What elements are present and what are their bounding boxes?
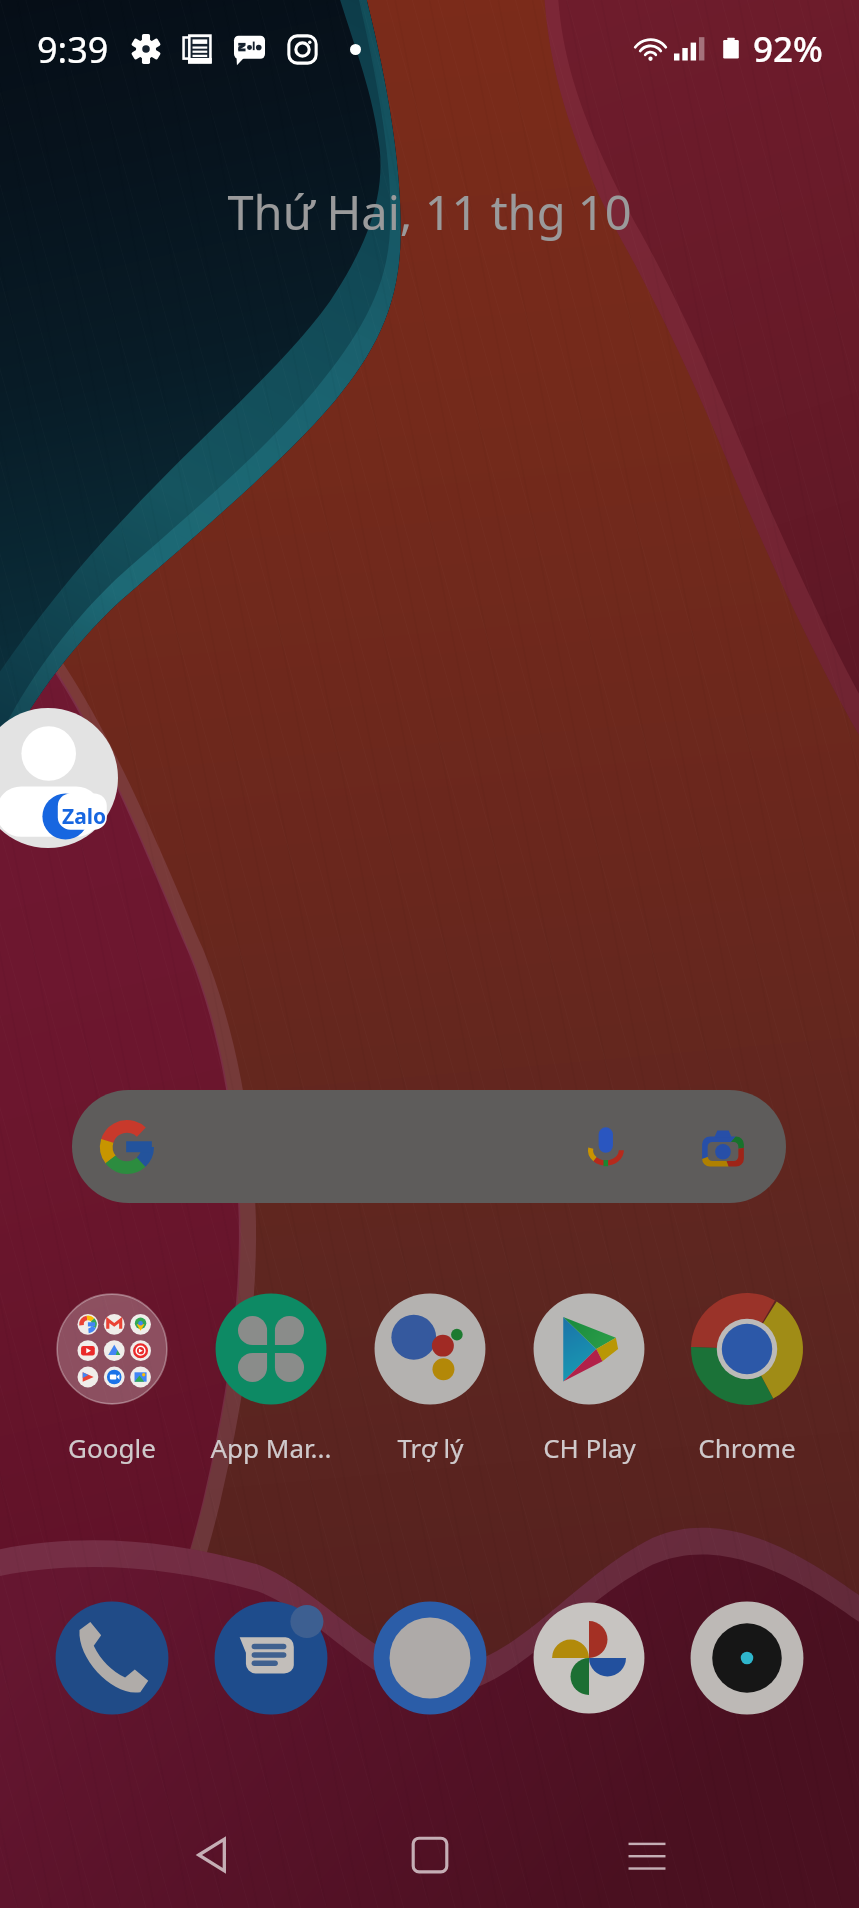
- button[interactable]: CH Play: [510, 1293, 668, 1463]
- button[interactable]: Photos: [523, 1592, 655, 1724]
- button[interactable]: Trợ lý: [351, 1293, 509, 1463]
- staticText: App Mar...: [210, 1430, 332, 1465]
- staticText: Chrome: [698, 1430, 796, 1465]
- button[interactable]: Zalo chat bubble: [0, 708, 118, 848]
- staticText: Zalo: [62, 802, 107, 831]
- button[interactable]: Messages: [205, 1592, 337, 1724]
- button[interactable]: Phone: [46, 1592, 178, 1724]
- button[interactable]: Back: [152, 1795, 272, 1908]
- staticText: 92%: [753, 25, 823, 73]
- staticText: CH Play: [543, 1430, 636, 1465]
- staticText: Google: [68, 1430, 156, 1465]
- button[interactable]: Camera: [364, 1592, 496, 1724]
- staticText: Trợ lý: [397, 1430, 464, 1465]
- button[interactable]: Clock: [681, 1592, 813, 1724]
- button[interactable]: Recents: [587, 1795, 707, 1908]
- button[interactable]: [72, 1090, 786, 1203]
- button[interactable]: Home: [370, 1795, 490, 1908]
- button[interactable]: Google: [33, 1293, 191, 1463]
- staticText: 9:39: [37, 25, 109, 74]
- button[interactable]: App Mar...: [192, 1293, 350, 1463]
- staticText: Thứ Hai, 11 thg 10: [227, 180, 632, 244]
- button[interactable]: Chrome: [668, 1293, 826, 1463]
